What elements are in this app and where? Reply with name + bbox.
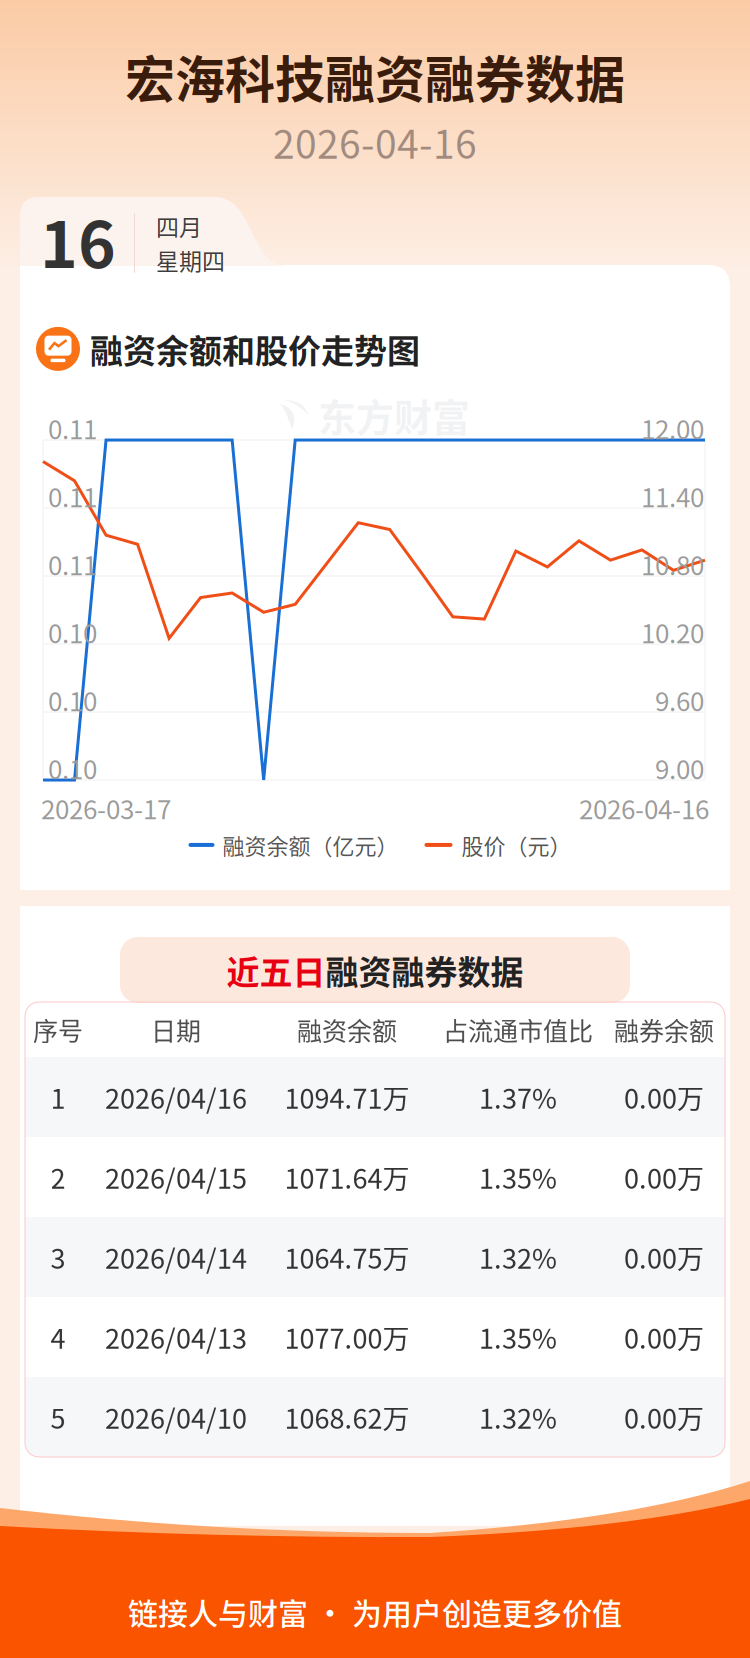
staticText: 宏海科技融资融券数据 — [125, 40, 625, 112]
staticText: 融资余额 — [297, 1011, 397, 1048]
staticText: 0.00万 — [624, 1157, 704, 1197]
staticText: 10.80 — [641, 545, 704, 583]
staticText: 0.10 — [48, 749, 97, 787]
staticText: 9.00 — [655, 749, 704, 787]
staticText: 2026-03-17 — [41, 789, 171, 827]
staticText: 0.11 — [48, 545, 97, 583]
staticText: 1.32% — [479, 1237, 557, 1277]
staticText: 1.35% — [479, 1157, 557, 1197]
staticText: 1 — [50, 1077, 65, 1117]
staticText: 四月 — [156, 209, 202, 243]
staticText: 0.00万 — [624, 1397, 704, 1437]
staticText: 1094.71万 — [284, 1077, 409, 1117]
staticText: 序号 — [33, 1011, 83, 1048]
staticText: 融资余额（亿元） — [222, 829, 398, 861]
staticText: 星期四 — [156, 243, 225, 277]
staticText: 0.00万 — [624, 1077, 704, 1117]
staticText: 16 — [40, 194, 116, 286]
staticText: 2026-04-16 — [273, 113, 477, 170]
staticText: 9.60 — [655, 681, 704, 719]
staticText: 融资余额和股价走势图 — [90, 325, 420, 373]
staticText: 融资融券数据 — [325, 946, 523, 994]
staticText: 1068.62万 — [284, 1397, 409, 1437]
staticText: 1.32% — [479, 1397, 557, 1437]
staticText: 0.10 — [48, 681, 97, 719]
staticText: 日期 — [151, 1011, 201, 1048]
staticText: 2026/04/15 — [105, 1157, 247, 1197]
staticText: 股价（元） — [461, 829, 571, 861]
staticText: 3 — [50, 1237, 65, 1277]
staticText: 0.11 — [48, 477, 97, 515]
staticText: 0.00万 — [624, 1317, 704, 1357]
staticText: 2026-04-16 — [579, 789, 709, 827]
staticText: 0.11 — [48, 409, 97, 447]
staticText: 东方财富 — [318, 1213, 470, 1268]
staticText: 2026/04/16 — [105, 1077, 247, 1117]
staticText: 1064.75万 — [284, 1237, 409, 1277]
staticText: 融券余额 — [614, 1011, 714, 1048]
staticText: 1.35% — [479, 1317, 557, 1357]
staticText: 1077.00万 — [284, 1317, 409, 1357]
staticText: 0.10 — [48, 613, 97, 651]
staticText: 2026/04/14 — [105, 1237, 247, 1277]
staticText: 4 — [50, 1317, 65, 1357]
staticText: 2 — [50, 1157, 65, 1197]
staticText: 1071.64万 — [284, 1157, 409, 1197]
staticText: 5 — [50, 1397, 65, 1437]
staticText: 2026/04/10 — [105, 1397, 247, 1437]
staticText: 0.00万 — [624, 1237, 704, 1277]
staticText: 10.20 — [641, 613, 704, 651]
staticText: 1.37% — [479, 1077, 557, 1117]
staticText: 12.00 — [641, 409, 704, 447]
staticText: 2026/04/13 — [105, 1317, 247, 1357]
staticText: 东方财富 — [318, 387, 470, 442]
staticText: 近五日 — [226, 946, 325, 994]
staticText: 11.40 — [641, 477, 704, 515]
staticText: 占流通市值比 — [443, 1011, 593, 1048]
staticText: 链接人与财富 · 为用户创造更多价值 — [128, 1590, 622, 1633]
